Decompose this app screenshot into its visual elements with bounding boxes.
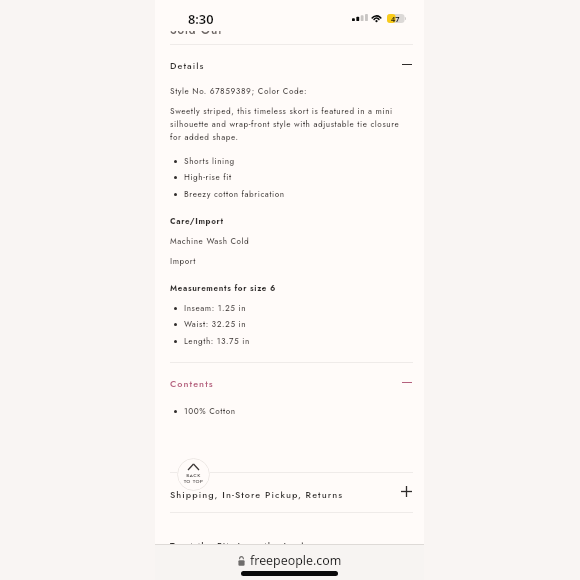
staticText: 100% Cotton — [184, 405, 236, 417]
button[interactable]: Shipping, In-Store Pickup, Returns — [155, 480, 424, 504]
staticText: 8:30 — [188, 10, 214, 27]
staticText: Care/Import — [170, 215, 224, 227]
staticText: Import — [170, 255, 196, 267]
staticText: Length: 13.75 in — [184, 335, 250, 347]
button[interactable]: Back to top — [177, 458, 210, 491]
button[interactable]: Details — [155, 52, 424, 77]
staticText: High-rise fit — [184, 171, 232, 183]
staticText: Details — [170, 59, 205, 72]
other: Expand — [401, 486, 412, 497]
staticText: 47 — [391, 14, 400, 23]
staticText: Shipping, In-Store Pickup, Returns — [170, 488, 344, 501]
staticText: Trust the Fit, Love the Look — [170, 539, 307, 552]
staticText: Waist: 32.25 in — [184, 318, 247, 330]
staticText: Sweetly striped, this timeless skort is … — [170, 105, 403, 143]
staticText: Shorts lining — [184, 155, 235, 167]
button[interactable]: Contents — [155, 370, 424, 395]
staticText: Style No. 67859389; Color Code: — [170, 85, 308, 97]
staticText: Measurements for size 6 — [170, 282, 277, 294]
staticText: Contents — [170, 377, 214, 390]
staticText: freepeople.com — [250, 552, 342, 569]
staticText: Inseam: 1.25 in — [184, 302, 247, 314]
staticText: Breezy cotton fabrication — [184, 188, 285, 200]
staticText: BACK TO TOP — [177, 472, 210, 485]
staticText: Machine Wash Cold — [170, 235, 250, 247]
staticText: Sold Out — [170, 22, 223, 39]
